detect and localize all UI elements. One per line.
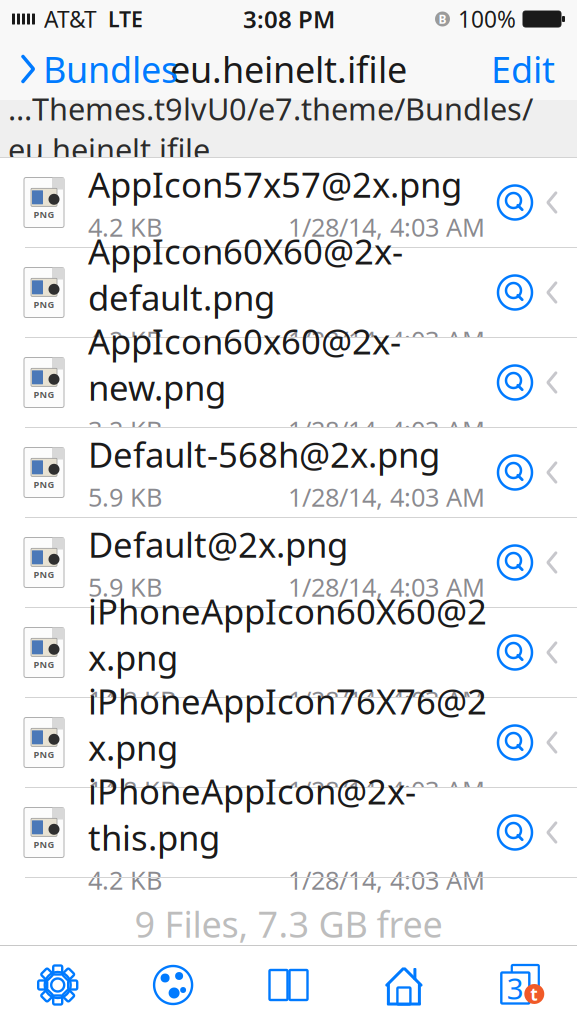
staticText: AT&T [44,4,97,34]
button[interactable]: Bundles [8,39,190,99]
staticText: LTE [108,5,143,33]
button[interactable]: Preview iPhoneAppIcon60X60@2x.png [495,632,535,672]
staticText: 1/28/14, 4:03 AM [288,413,485,447]
button[interactable]: Edit [477,39,569,99]
button[interactable]: Details for Default-568h@2x.png [535,459,569,485]
button[interactable]: Details for iPhoneAppIcon60X60@2x.png [535,639,569,665]
button[interactable]: PNG [0,428,495,517]
staticText: PNG [33,298,54,311]
staticText: Default-568h@2x.png [88,431,440,477]
button[interactable]: Home [346,964,462,1006]
button[interactable]: PNG [0,248,495,337]
button[interactable]: PNG [0,608,495,697]
staticText: eu.heinelt.ifile [170,45,407,93]
staticText: 1/28/14, 4:03 AM [288,683,485,717]
staticText: 5.9 KB [88,480,162,514]
button[interactable]: Details for AppIcon60x60@2x-new.png [535,369,569,395]
staticText: 1/28/14, 4:03 AM [288,323,485,357]
staticText: iPhoneAppIcon@2x-this.png [88,768,416,860]
staticText: Default@2x.png [88,521,348,567]
staticText: 9 Files, 7.3 GB free [134,900,442,948]
staticText: Bundles [43,45,178,93]
staticText: iPhoneAppIcon76X76@2x.png [88,678,487,770]
staticText: 4.2 KB [88,210,162,244]
staticText: 1/28/14, 4:03 AM [288,773,485,807]
staticText: 4.2 KB [88,323,162,357]
staticText: iPhoneAppIcon60X60@2x.png [88,588,487,680]
button[interactable]: Details for iPhoneAppIcon76X76@2x.png [535,729,569,755]
button[interactable]: Details for AppIcon60X60@2x-default.png [535,279,569,305]
staticText: PNG [33,478,54,491]
staticText: 1/28/14, 4:03 AM [288,863,485,897]
button[interactable]: PNG [0,158,495,247]
staticText: t [530,982,538,1005]
button[interactable]: Preview AppIcon57x57@2x.png [495,182,535,222]
staticText: 3 [507,968,524,1007]
staticText: PNG [33,748,54,761]
staticText: 14.8 KB [88,683,176,717]
staticText: 4.2 KB [88,863,162,897]
button[interactable]: Details for AppIcon57x57@2x.png [535,189,569,215]
button[interactable]: PNG [0,338,495,427]
button[interactable]: Preview AppIcon60x60@2x-new.png [495,362,535,402]
button[interactable]: PNG [0,788,495,877]
staticText: PNG [33,208,54,221]
staticText: PNG [33,388,54,401]
staticText: …Themes.t9lvU0/e7.theme/Bundles/eu.heine… [8,88,533,170]
button[interactable]: Preview Default-568h@2x.png [495,452,535,492]
staticText: 5.9 KB [88,570,162,604]
staticText: 1/28/14, 4:03 AM [288,570,485,604]
staticText: AppIcon60X60@2x-default.png [88,228,403,320]
button[interactable]: Preview Default@2x.png [495,542,535,582]
button[interactable]: Preview AppIcon60X60@2x-default.png [495,272,535,312]
button[interactable]: Settings [0,964,115,1006]
button[interactable]: Open documents, 3 items [462,962,577,1008]
staticText: 1/28/14, 4:03 AM [288,480,485,514]
staticText: B [438,11,446,27]
button[interactable]: PNG [0,698,495,787]
staticText: 100% [458,4,516,34]
button[interactable]: Web [115,964,231,1006]
staticText: PNG [33,658,54,671]
button[interactable]: Preview iPhoneAppIcon@2x-this.png [495,812,535,852]
staticText: 3:08 PM [243,3,335,35]
staticText: 1/28/14, 4:03 AM [288,210,485,244]
staticText: AppIcon57x57@2x.png [88,161,462,207]
staticText: 14.8 KB [88,773,176,807]
button[interactable]: Bookmarks [231,964,346,1006]
button[interactable]: Details for iPhoneAppIcon@2x-this.png [535,819,569,845]
button[interactable]: Details for Default@2x.png [535,549,569,575]
staticText: 3.2 KB [88,413,162,447]
staticText: PNG [33,568,54,581]
button[interactable]: PNG [0,518,495,607]
button[interactable]: Preview iPhoneAppIcon76X76@2x.png [495,722,535,762]
staticText: Edit [491,45,555,93]
staticText: PNG [33,838,54,851]
staticText: AppIcon60x60@2x-new.png [88,318,401,410]
